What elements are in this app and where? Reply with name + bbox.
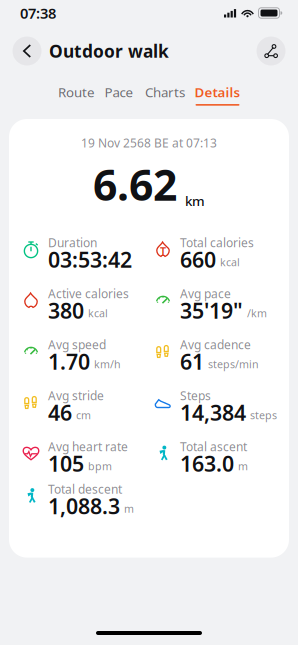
staticText: Avg heart rate xyxy=(48,439,128,454)
staticText: 660 xyxy=(180,245,216,274)
staticText: 03:53:42 xyxy=(48,245,132,274)
staticText: Avg stride xyxy=(48,388,104,403)
staticText: Charts xyxy=(145,83,185,101)
staticText: m xyxy=(238,459,248,473)
button[interactable]: Pace xyxy=(99,84,139,105)
staticText: km xyxy=(185,192,205,210)
staticText: bpm xyxy=(88,459,112,473)
staticText: km/h xyxy=(94,357,121,371)
staticText: 61 xyxy=(180,347,204,376)
staticText: Details xyxy=(194,83,240,101)
staticText: Outdoor walk xyxy=(49,39,169,62)
staticText: 105 xyxy=(48,449,84,478)
staticText: Pace xyxy=(104,83,133,101)
button[interactable]: Back xyxy=(11,35,43,67)
staticText: Duration xyxy=(48,235,97,250)
staticText: Steps xyxy=(180,388,211,403)
button[interactable]: Charts xyxy=(139,84,191,105)
button[interactable]: Share route xyxy=(255,35,287,67)
staticText: /km xyxy=(247,306,267,320)
staticText: 163.0 xyxy=(180,449,234,478)
staticText: kcal xyxy=(220,255,240,269)
staticText: Avg cadence xyxy=(180,337,251,352)
staticText: 07:38 xyxy=(20,3,56,23)
staticText: cm xyxy=(76,408,91,422)
staticText: 19 Nov 2568 BE at 07:13 xyxy=(81,135,217,151)
staticText: 1.70 xyxy=(48,347,90,376)
staticText: Total ascent xyxy=(180,439,247,454)
staticText: Avg pace xyxy=(180,286,231,301)
staticText: 1,088.3 xyxy=(48,492,120,520)
button[interactable]: Details xyxy=(191,84,244,105)
staticText: m xyxy=(124,501,134,516)
staticText: 380 xyxy=(48,296,84,325)
button[interactable]: Route xyxy=(54,84,99,105)
staticText: Total calories xyxy=(180,235,254,250)
staticText: 6.62 xyxy=(93,156,177,213)
staticText: 14,384 xyxy=(180,398,246,427)
staticText: Avg speed xyxy=(48,337,106,352)
staticText: steps xyxy=(250,408,277,422)
staticText: Total descent xyxy=(48,481,122,497)
staticText: kcal xyxy=(88,306,108,320)
staticText: Active calories xyxy=(48,286,129,301)
staticText: 35'19" xyxy=(180,296,243,325)
staticText: T xyxy=(160,244,166,258)
staticText: Route xyxy=(58,83,95,101)
staticText: 46 xyxy=(48,398,72,427)
staticText: steps/min xyxy=(208,357,259,371)
